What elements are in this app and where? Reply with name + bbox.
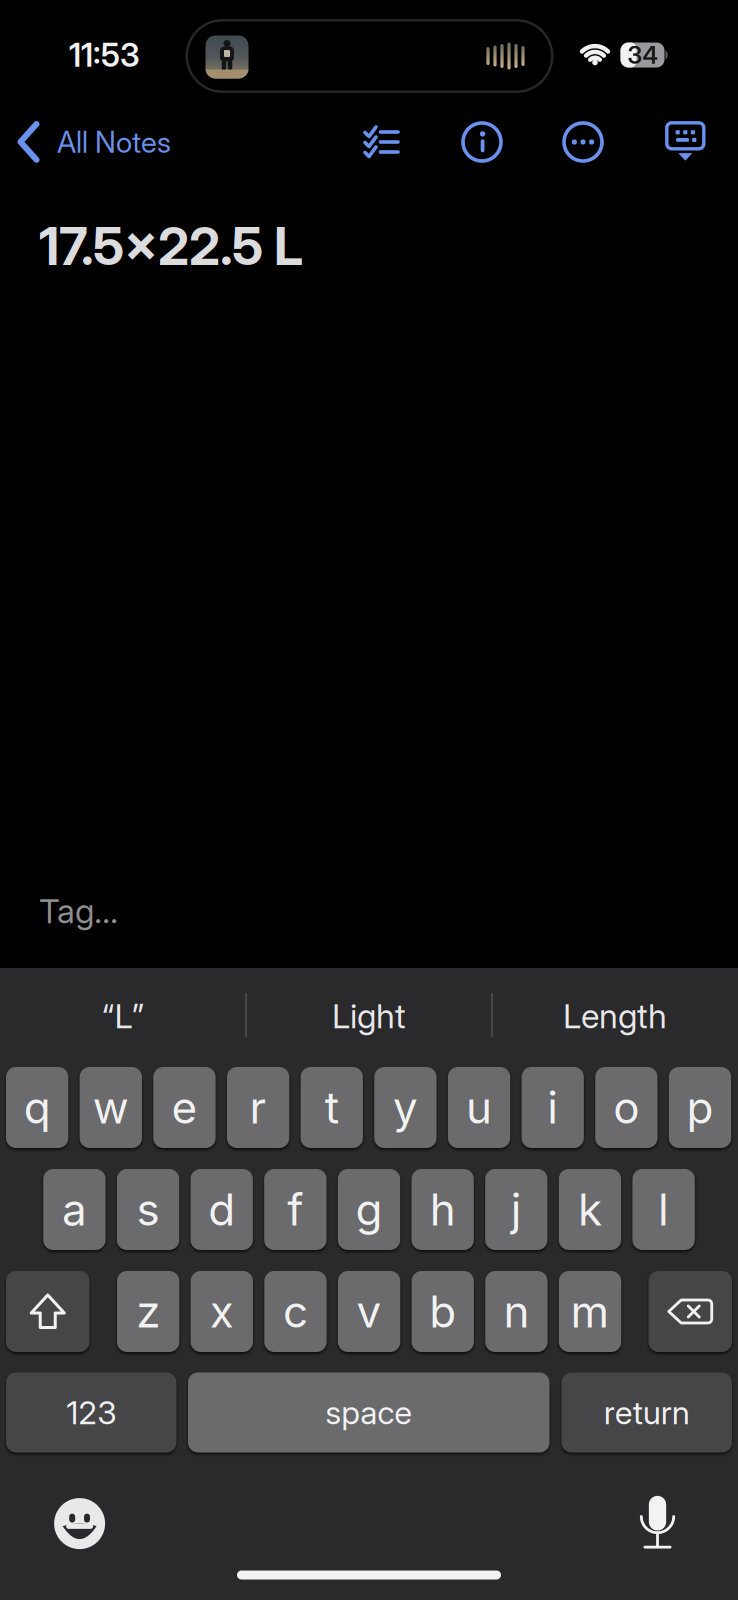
button[interactable]: i: [522, 1067, 584, 1148]
staticText: i: [547, 1081, 558, 1134]
button[interactable]: Delete: [648, 1271, 732, 1352]
staticText: Light: [332, 996, 406, 1036]
staticText: q: [24, 1081, 51, 1134]
button[interactable]: Emoji: [54, 1498, 106, 1550]
staticText: t: [325, 1081, 339, 1134]
button[interactable]: return: [561, 1372, 732, 1452]
button[interactable]: q: [6, 1067, 68, 1148]
staticText: k: [578, 1183, 602, 1236]
staticText: 123: [66, 1393, 116, 1432]
staticText: p: [686, 1081, 713, 1134]
staticText: Tag...: [39, 891, 118, 931]
staticText: z: [136, 1285, 160, 1338]
button[interactable]: j: [485, 1169, 547, 1250]
staticText: b: [429, 1285, 456, 1338]
staticText: a: [62, 1183, 87, 1236]
staticText: g: [355, 1183, 382, 1236]
staticText: v: [357, 1285, 382, 1338]
staticText: w: [93, 1081, 129, 1134]
button[interactable]: e: [153, 1067, 216, 1148]
button[interactable]: h: [411, 1169, 474, 1250]
staticText: x: [210, 1285, 234, 1338]
button[interactable]: Light: [249, 981, 489, 1051]
button[interactable]: v: [338, 1271, 400, 1352]
staticText: 17.5x22.5 L: [39, 214, 303, 277]
button[interactable]: l: [632, 1169, 695, 1250]
staticText: f: [287, 1183, 303, 1236]
button[interactable]: Checklist: [363, 126, 399, 158]
staticText: c: [283, 1285, 308, 1338]
staticText: 34: [627, 40, 657, 69]
staticText: return: [604, 1393, 690, 1432]
button[interactable]: Hide keyboard: [663, 120, 707, 164]
staticText: r: [250, 1081, 267, 1134]
button[interactable]: a: [43, 1169, 106, 1250]
button[interactable]: All Notes: [17, 113, 237, 171]
button[interactable]: Length: [495, 981, 735, 1051]
button[interactable]: z: [117, 1271, 179, 1352]
button[interactable]: x: [191, 1271, 253, 1352]
button[interactable]: d: [191, 1169, 253, 1250]
button[interactable]: t: [301, 1067, 363, 1148]
staticText: o: [613, 1081, 639, 1134]
button[interactable]: k: [559, 1169, 621, 1250]
staticText: j: [511, 1183, 522, 1236]
button[interactable]: n: [485, 1271, 547, 1352]
button[interactable]: More: [562, 121, 604, 163]
button[interactable]: u: [448, 1067, 510, 1148]
staticText: s: [137, 1183, 160, 1236]
button[interactable]: space: [188, 1372, 549, 1452]
button[interactable]: c: [264, 1271, 327, 1352]
button[interactable]: Shift: [6, 1271, 89, 1352]
staticText: space: [325, 1393, 412, 1432]
button[interactable]: “L”: [3, 981, 243, 1051]
button[interactable]: Tag...: [39, 884, 339, 938]
staticText: d: [208, 1183, 235, 1236]
staticText: l: [658, 1183, 669, 1236]
button[interactable]: b: [412, 1271, 474, 1352]
staticText: n: [503, 1285, 529, 1338]
button[interactable]: s: [117, 1169, 179, 1250]
button[interactable]: f: [264, 1169, 326, 1250]
staticText: e: [171, 1081, 197, 1134]
staticText: m: [571, 1285, 610, 1338]
button[interactable]: Note info: [461, 121, 503, 163]
staticText: u: [466, 1081, 492, 1134]
button[interactable]: y: [374, 1067, 436, 1148]
button[interactable]: r: [227, 1067, 289, 1148]
button[interactable]: g: [338, 1169, 400, 1250]
button[interactable]: o: [595, 1067, 657, 1148]
button[interactable]: 123: [6, 1372, 176, 1452]
staticText: “L”: [101, 996, 144, 1036]
staticText: h: [430, 1183, 456, 1236]
button[interactable]: m: [559, 1271, 621, 1352]
button[interactable]: p: [669, 1067, 731, 1148]
button[interactable]: w: [80, 1067, 142, 1148]
staticText: 11:53: [69, 36, 140, 74]
staticText: y: [393, 1081, 418, 1134]
button[interactable]: Dictate: [635, 1492, 679, 1552]
staticText: All Notes: [57, 124, 171, 160]
staticText: Length: [563, 996, 667, 1036]
